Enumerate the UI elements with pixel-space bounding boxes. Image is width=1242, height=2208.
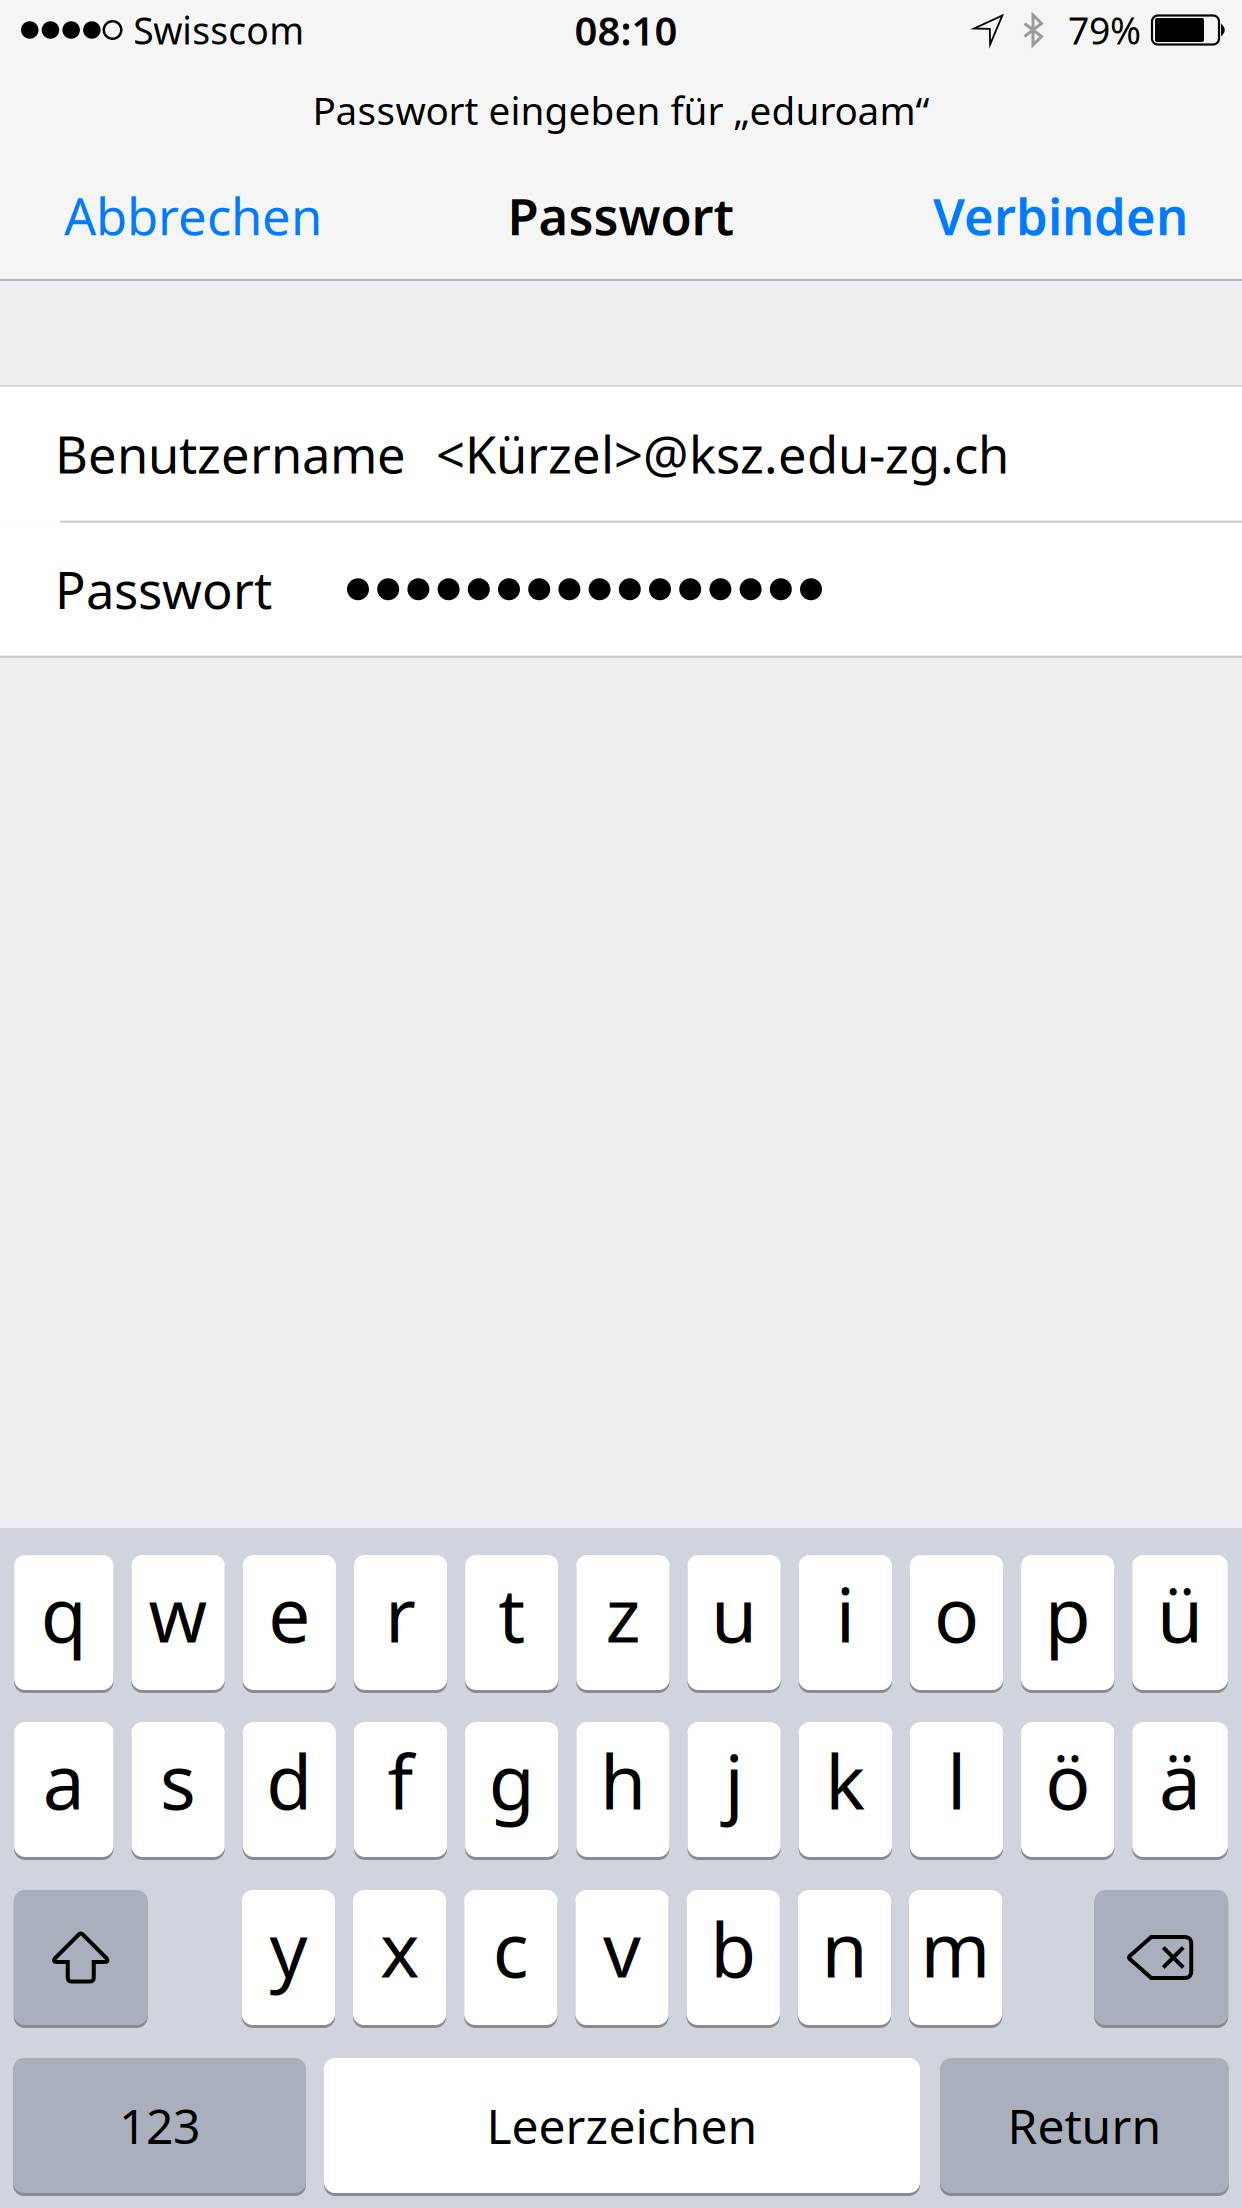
staticText: v	[603, 1899, 641, 1998]
staticText: Passwort eingeben für „eduroam“	[312, 84, 929, 136]
button[interactable]: ö	[1021, 1720, 1114, 1858]
button[interactable]: Passwort	[0, 523, 1242, 656]
staticText: k	[825, 1731, 865, 1830]
staticText: Passwort	[507, 182, 734, 249]
staticText: <Kürzel>@ksz.edu-zg.ch	[436, 420, 1009, 487]
staticText: u	[711, 1564, 757, 1663]
button[interactable]: g	[465, 1720, 558, 1858]
button[interactable]: c	[464, 1888, 557, 2026]
button[interactable]: e	[243, 1553, 336, 1691]
button[interactable]: m	[909, 1888, 1002, 2026]
staticText: y	[269, 1899, 307, 1998]
button[interactable]: i	[799, 1553, 892, 1691]
button[interactable]: Verbinden	[905, 150, 1206, 281]
staticText: e	[268, 1564, 310, 1663]
button[interactable]: Benutzername	[0, 387, 1242, 521]
button[interactable]: o	[910, 1553, 1003, 1691]
button[interactable]: w	[131, 1553, 225, 1691]
staticText: Leerzeichen	[486, 2094, 757, 2157]
staticText: w	[149, 1564, 208, 1663]
staticText: h	[600, 1731, 646, 1830]
button[interactable]: 123	[13, 2056, 306, 2194]
staticText: i	[836, 1564, 855, 1663]
button[interactable]: h	[576, 1720, 669, 1858]
staticText: z	[605, 1564, 640, 1663]
button[interactable]: Leerzeichen	[324, 2056, 920, 2194]
button[interactable]: y	[242, 1888, 335, 2026]
button[interactable]: p	[1021, 1553, 1114, 1691]
staticText: o	[934, 1564, 979, 1663]
button[interactable]: Umschalten	[14, 1888, 148, 2026]
button[interactable]: d	[243, 1720, 336, 1858]
button[interactable]: n	[798, 1888, 891, 2026]
staticText: Abbrechen	[64, 182, 322, 249]
button[interactable]: Return	[940, 2056, 1229, 2194]
staticText: m	[921, 1899, 991, 1998]
button[interactable]: Löschen	[1094, 1888, 1228, 2026]
button[interactable]: j	[687, 1720, 781, 1858]
staticText: q	[41, 1564, 87, 1663]
button[interactable]: u	[687, 1553, 781, 1691]
staticText: l	[947, 1731, 966, 1830]
staticText: Verbinden	[933, 182, 1188, 249]
button[interactable]: q	[14, 1553, 114, 1691]
staticText: b	[710, 1899, 756, 1998]
staticText: ü	[1157, 1564, 1203, 1663]
staticText: j	[725, 1731, 744, 1830]
staticText: 08:10	[574, 3, 677, 56]
button[interactable]: x	[353, 1888, 446, 2026]
staticText: t	[498, 1564, 525, 1663]
button[interactable]: a	[14, 1720, 114, 1858]
button[interactable]: r	[354, 1553, 447, 1691]
button[interactable]: b	[686, 1888, 780, 2026]
staticText: ö	[1045, 1731, 1090, 1830]
button[interactable]: v	[575, 1888, 669, 2026]
staticText: p	[1045, 1564, 1091, 1663]
button[interactable]: z	[576, 1553, 669, 1691]
staticText: Passwort	[55, 556, 272, 623]
staticText: r	[385, 1564, 416, 1663]
button[interactable]: s	[131, 1720, 225, 1858]
staticText: 79%	[1068, 5, 1141, 55]
button[interactable]: f	[354, 1720, 447, 1858]
staticText: a	[43, 1731, 85, 1830]
button[interactable]: k	[799, 1720, 892, 1858]
staticText: Swisscom	[133, 5, 304, 55]
button[interactable]: ü	[1132, 1553, 1228, 1691]
staticText: s	[160, 1731, 196, 1830]
staticText: x	[380, 1899, 419, 1998]
staticText: d	[266, 1731, 312, 1830]
staticText: n	[821, 1899, 867, 1998]
staticText: g	[489, 1731, 535, 1830]
staticText: Return	[1007, 2094, 1161, 2157]
button[interactable]: l	[910, 1720, 1003, 1858]
staticText: Benutzername	[55, 420, 406, 487]
staticText: c	[493, 1899, 529, 1998]
staticText: 123	[119, 2094, 200, 2157]
staticText: ä	[1159, 1731, 1201, 1830]
staticText: f	[387, 1731, 413, 1830]
button[interactable]: Abbrechen	[36, 150, 350, 281]
button[interactable]: ä	[1132, 1720, 1228, 1858]
button[interactable]: t	[465, 1553, 558, 1691]
